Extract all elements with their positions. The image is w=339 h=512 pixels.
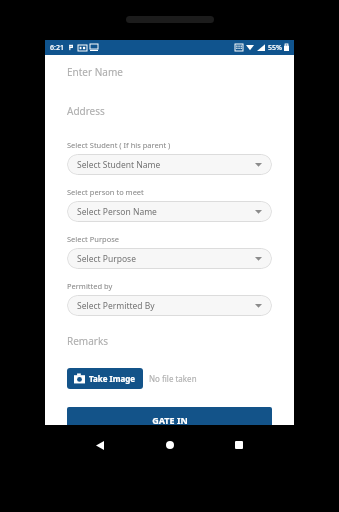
staticText: Select person to meet (67, 187, 144, 197)
staticText: Remarks (67, 334, 109, 348)
staticText: Select Person Name (77, 206, 157, 218)
staticText: Address (67, 104, 105, 118)
staticText: 55% (268, 43, 282, 53)
staticText: GATE IN (152, 414, 188, 426)
button[interactable]: Select Purpose (67, 248, 272, 269)
button[interactable]: Select Person Name (67, 201, 272, 222)
button[interactable]: Home (155, 430, 185, 460)
button[interactable]: Select Student Name (67, 154, 272, 175)
staticText: Select Student ( If his parent ) (67, 140, 171, 150)
button[interactable]: Select Permitted By (67, 295, 272, 316)
other: Take Image (74, 373, 85, 384)
staticText: Select Student Name (77, 159, 161, 171)
staticText: Enter Name (67, 65, 123, 79)
staticText: No file taken (149, 373, 197, 384)
staticText: Select Purpose (67, 234, 120, 244)
staticText: Select Permitted By (77, 300, 155, 312)
staticText: Take Image (89, 373, 136, 384)
button[interactable]: Take Image (67, 368, 143, 389)
staticText: 6:21 (50, 43, 64, 53)
staticText: Select Purpose (77, 253, 136, 265)
button[interactable]: Back (85, 430, 115, 460)
button[interactable]: GATE IN (67, 407, 272, 432)
button[interactable]: Recent apps (224, 430, 254, 460)
staticText: Permitted by (67, 281, 113, 291)
